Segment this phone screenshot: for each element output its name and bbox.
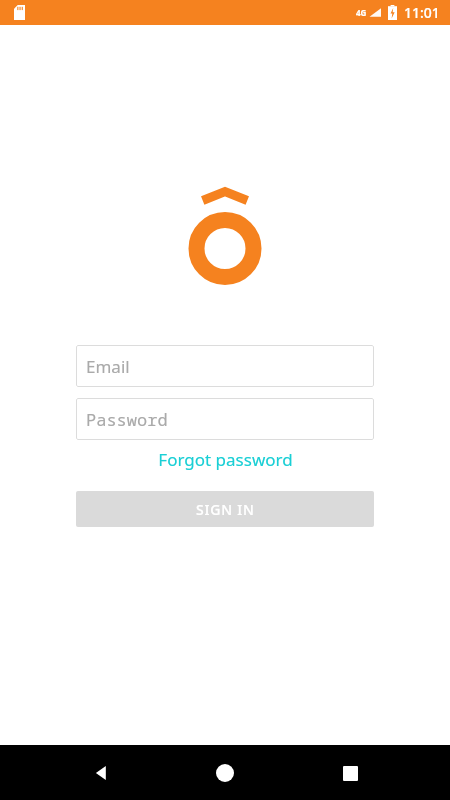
staticText: Email — [86, 355, 130, 378]
button[interactable]: Back — [77, 749, 125, 797]
staticText: SIGN IN — [196, 500, 255, 519]
button[interactable]: Home — [201, 749, 249, 797]
button[interactable]: Password — [76, 398, 374, 440]
staticText: Forgot password — [158, 448, 293, 471]
staticText: 11:01 — [404, 3, 440, 22]
staticText: Password — [86, 408, 168, 431]
button[interactable]: Email — [76, 345, 374, 387]
button[interactable]: SIGN IN — [76, 491, 374, 527]
staticText: 4G — [356, 7, 367, 18]
button[interactable]: Recents — [326, 749, 374, 797]
button[interactable]: Forgot password — [76, 448, 374, 471]
